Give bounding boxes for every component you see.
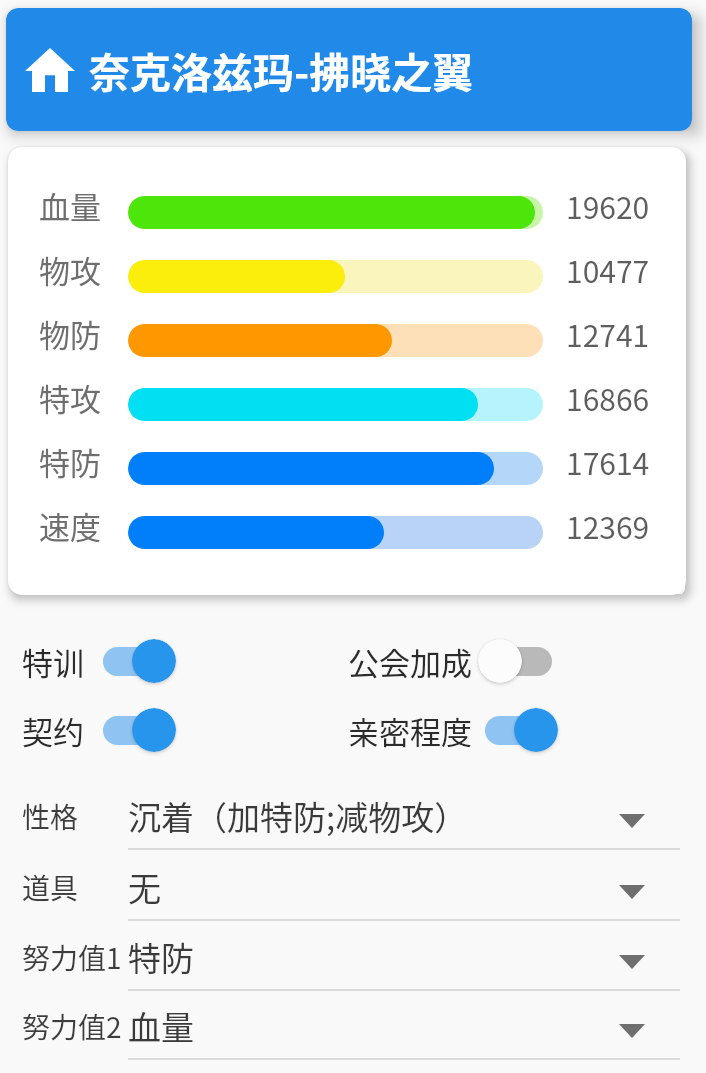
button[interactable]: 努力值1: [0, 920, 706, 990]
button[interactable]: 奈克洛兹玛-拂晓之翼: [6, 8, 692, 131]
staticText: 10477: [566, 248, 650, 291]
staticText: 特防: [39, 439, 101, 484]
staticText: 速度: [39, 503, 101, 548]
button[interactable]: [100, 639, 176, 683]
staticText: 特攻: [39, 375, 101, 420]
staticText: 契约: [22, 708, 84, 752]
button[interactable]: 道具: [0, 850, 706, 920]
staticText: 沉着（加特防;减物攻）: [128, 792, 468, 840]
button[interactable]: [478, 639, 554, 683]
staticText: 努力值2: [22, 1006, 122, 1047]
staticText: 亲密程度: [348, 708, 472, 752]
staticText: 16866: [566, 376, 650, 419]
staticText: 17614: [566, 440, 650, 483]
staticText: 性格: [22, 796, 79, 837]
staticText: 血量: [39, 183, 101, 228]
button[interactable]: 性格: [0, 779, 706, 849]
staticText: 物防: [39, 311, 101, 356]
staticText: 血量: [128, 1002, 194, 1050]
button[interactable]: [482, 708, 558, 752]
staticText: 12741: [566, 312, 650, 355]
button[interactable]: 努力值2: [0, 989, 706, 1059]
staticText: 19620: [566, 184, 650, 227]
staticText: 特防: [128, 933, 194, 981]
staticText: 特训: [22, 639, 84, 683]
staticText: 奈克洛兹玛-拂晓之翼: [89, 40, 474, 99]
staticText: 物攻: [39, 247, 101, 292]
staticText: 无: [128, 863, 161, 911]
staticText: 努力值1: [22, 937, 122, 978]
button[interactable]: [100, 708, 176, 752]
staticText: 公会加成: [348, 639, 472, 683]
staticText: 12369: [566, 504, 650, 547]
staticText: 道具: [22, 867, 79, 908]
